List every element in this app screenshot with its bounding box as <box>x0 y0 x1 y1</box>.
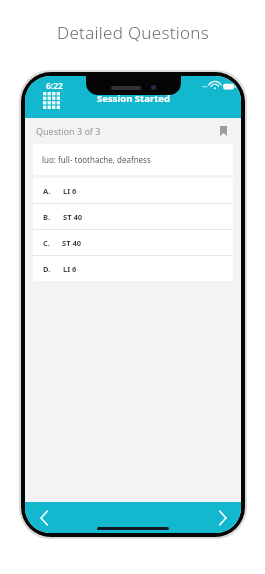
button[interactable]: Previous <box>31 505 57 531</box>
staticText: Session Started <box>97 92 170 105</box>
button[interactable]: Bookmark <box>216 124 230 138</box>
button[interactable]: D. <box>33 256 233 281</box>
staticText: Question 3 of 3 <box>36 125 101 137</box>
button[interactable]: Next <box>209 505 235 531</box>
staticText: A. <box>43 186 51 196</box>
button[interactable]: Menu <box>41 90 61 110</box>
button[interactable]: C. <box>33 230 233 255</box>
staticText: Detailed Questions <box>57 21 209 44</box>
staticText: ST 40 <box>62 238 81 248</box>
staticText: C. <box>43 238 50 248</box>
staticText: LI 6 <box>63 186 77 196</box>
staticText: B. <box>43 212 51 222</box>
staticText: ST 40 <box>63 212 82 222</box>
button[interactable]: B. <box>33 204 233 229</box>
button[interactable]: A. <box>33 178 233 203</box>
staticText: D. <box>43 264 51 274</box>
staticText: luo: full- toothache, deafness <box>42 154 151 165</box>
staticText: LI 6 <box>63 264 77 274</box>
button[interactable]: luo: full- toothache, deafness <box>33 144 233 175</box>
staticText: 6:22 <box>46 80 63 92</box>
